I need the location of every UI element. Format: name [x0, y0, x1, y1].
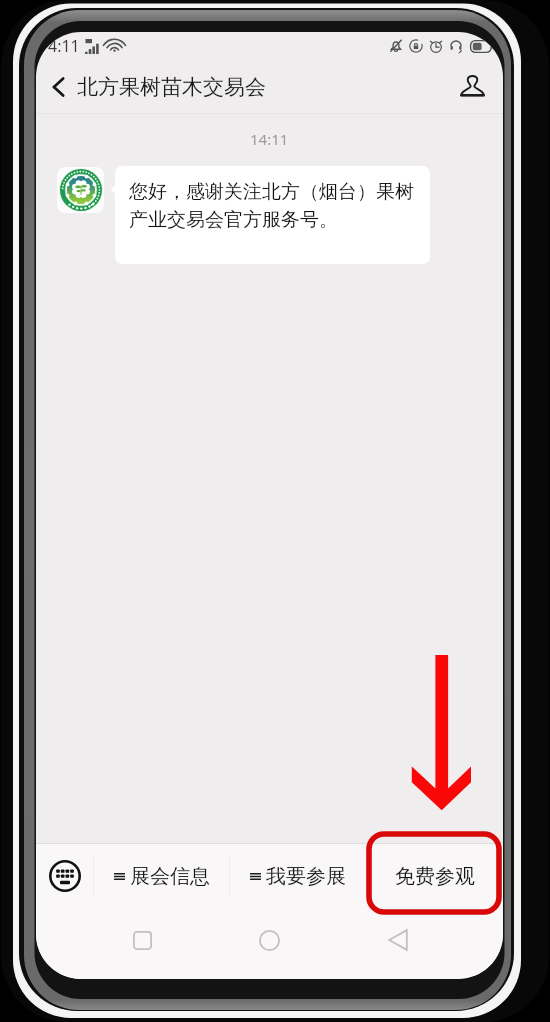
- button[interactable]: 我要参展: [230, 843, 366, 909]
- staticText: 您好，感谢关注北方（烟台）果树 产业交易会官方服务号。: [129, 180, 414, 232]
- staticText: 免费参观: [395, 864, 475, 889]
- button[interactable]: Keyboard: [36, 843, 93, 909]
- button[interactable]: 您好，感谢关注北方（烟台）果树 产业交易会官方服务号。: [115, 166, 430, 264]
- button[interactable]: Back: [36, 60, 77, 114]
- staticText: 4:11: [48, 35, 80, 57]
- staticText: 我要参展: [266, 864, 346, 889]
- staticText: 展会信息: [130, 864, 210, 889]
- button[interactable]: Back: [341, 912, 454, 968]
- staticText: 北方果树苗木交易会: [77, 74, 266, 100]
- button[interactable]: Contact profile: [441, 60, 503, 114]
- staticText: 14:11: [250, 129, 289, 149]
- button[interactable]: Home: [213, 912, 326, 968]
- button[interactable]: 免费参观: [367, 843, 503, 909]
- button[interactable]: 展会信息: [94, 843, 229, 909]
- button[interactable]: Official account avatar: [57, 167, 104, 213]
- button[interactable]: Recents: [86, 912, 199, 968]
